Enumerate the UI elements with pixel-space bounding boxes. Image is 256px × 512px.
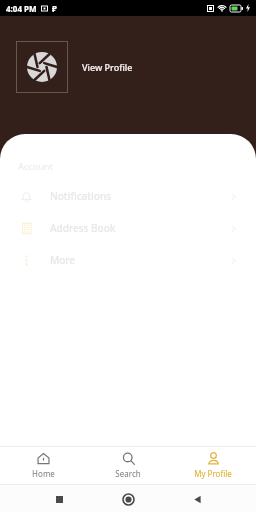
button[interactable]: Search <box>92 447 164 484</box>
staticText: Home <box>32 468 55 479</box>
staticText: ₽ <box>52 3 57 14</box>
staticText: View Profile <box>82 61 133 73</box>
button[interactable]: Address Book <box>0 212 256 244</box>
button[interactable]: Home <box>118 489 138 509</box>
staticText: Account <box>18 160 53 172</box>
staticText: 4:04 PM <box>6 3 37 14</box>
staticText: More <box>50 253 76 267</box>
button[interactable]: Notifications <box>0 180 256 212</box>
staticText: Notifications <box>50 189 112 203</box>
staticText: My Profile <box>194 468 232 479</box>
button[interactable]: My Profile <box>177 447 249 484</box>
button[interactable]: Back <box>187 489 207 509</box>
other: Profile photo <box>16 41 68 93</box>
staticText: Search <box>115 468 141 479</box>
button[interactable]: Recent apps <box>49 489 69 509</box>
button[interactable]: Home <box>7 447 79 484</box>
button[interactable]: Profile photo <box>16 41 133 93</box>
staticText: Address Book <box>50 221 116 235</box>
